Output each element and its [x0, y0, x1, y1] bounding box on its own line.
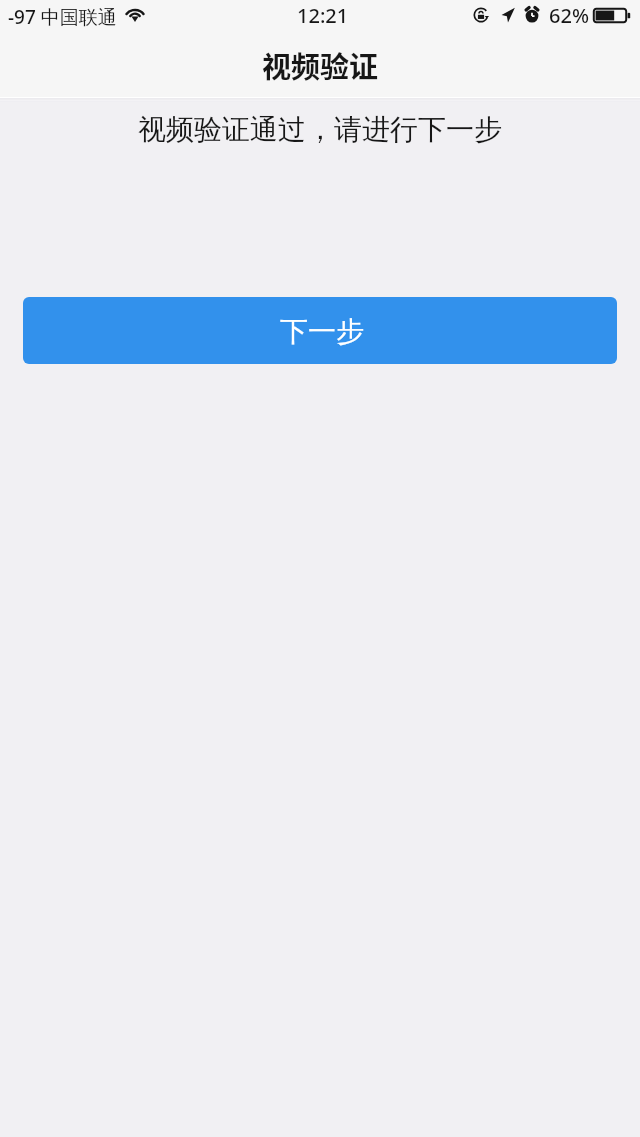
other: Alarm [524, 7, 540, 23]
other: Battery 62 percent [593, 8, 631, 23]
staticText: 视频验证 [262, 44, 379, 86]
other: Location [501, 7, 515, 23]
staticText: 62% [549, 2, 589, 29]
staticText: 12:21 [297, 2, 349, 29]
staticText: -97 中国联通 [8, 4, 117, 30]
other: Rotation lock [473, 7, 491, 23]
staticText: 视频验证通过，请进行下一步 [0, 112, 640, 147]
staticText: 下一步 [280, 314, 364, 349]
button[interactable]: 下一步 [23, 297, 617, 364]
